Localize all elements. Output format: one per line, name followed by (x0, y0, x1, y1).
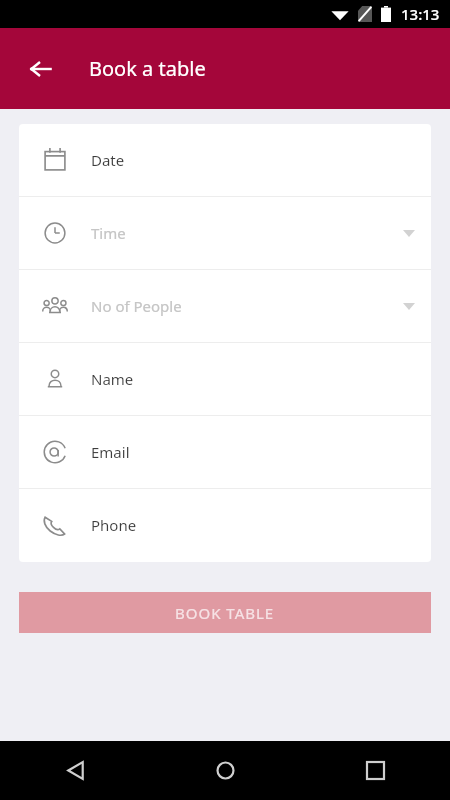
button[interactable]: Date (19, 124, 431, 196)
button[interactable]: Phone (19, 489, 431, 561)
staticText: Phone (91, 515, 137, 535)
staticText: BOOK TABLE (175, 603, 275, 623)
staticText: 13:13 (401, 4, 440, 24)
button[interactable]: Name (19, 343, 431, 415)
button[interactable]: Back (0, 741, 150, 800)
button[interactable]: BOOK TABLE (19, 592, 431, 633)
button[interactable]: No of People (19, 270, 431, 342)
staticText: Time (91, 223, 126, 243)
button[interactable]: Home (150, 741, 300, 800)
staticText: Book a table (89, 55, 206, 82)
button[interactable]: Email (19, 416, 431, 488)
staticText: Email (91, 442, 130, 462)
staticText: Name (91, 369, 134, 389)
button[interactable]: Recent apps (300, 741, 450, 800)
staticText: Date (91, 150, 125, 170)
button[interactable]: Back (17, 45, 65, 93)
staticText: No of People (91, 296, 182, 316)
button[interactable]: Time (19, 197, 431, 269)
